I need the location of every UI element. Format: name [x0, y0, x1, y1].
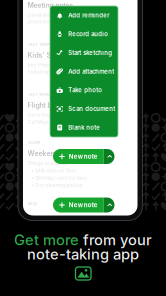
staticText: LAST WEEK [27, 42, 50, 47]
staticText: New note [69, 201, 98, 209]
staticText: from your [79, 231, 152, 249]
staticText: Blank note [68, 124, 100, 131]
staticText: Weekend list [27, 149, 70, 158]
staticText: David was going to check the [27, 12, 97, 18]
staticText: Flight bookings [27, 101, 77, 109]
staticText: Go to the airline site and [27, 112, 84, 118]
staticText: • Birthday card for Sam [31, 175, 86, 181]
button[interactable]: Add attachment [50, 62, 118, 81]
staticText: LAST MONTH [27, 92, 55, 97]
button[interactable]: Take photo [50, 81, 118, 99]
staticText: Take photo [68, 86, 102, 94]
staticText: note-taking app [27, 245, 139, 263]
staticText: Record audio [68, 30, 108, 38]
staticText: provisional quarterly budget [27, 19, 94, 25]
staticText: Meeting notes [27, 1, 73, 9]
staticText: Start sketching [68, 49, 112, 56]
staticText: Key Prep & Primary sessions [27, 62, 94, 68]
button[interactable]: Record audio [50, 25, 118, 43]
staticText: Scan document [68, 105, 115, 112]
staticText: • Milk and oat flour [31, 167, 76, 174]
button[interactable]: Add reminder [50, 6, 118, 25]
staticText: Add reminder [68, 12, 109, 19]
button[interactable]: Scan document [50, 99, 118, 118]
staticText: Kids' School [27, 51, 69, 59]
staticText: Things to pick up: [27, 160, 68, 166]
staticText: New note [69, 153, 98, 160]
staticText: 2023 [27, 201, 37, 206]
staticText: Add attachment [68, 68, 114, 75]
button[interactable]: Blank note [50, 118, 118, 137]
button[interactable]: New note [53, 197, 114, 212]
button[interactable]: Start sketching [50, 43, 118, 62]
staticText: Call Max about the transfer [27, 119, 93, 125]
staticText: Follow up about the trip fee [27, 69, 91, 75]
staticText: • Dry cleaning pickup [31, 182, 82, 188]
staticText: OLDER [27, 140, 40, 145]
staticText: Get more [14, 231, 79, 249]
button[interactable]: New note [53, 149, 114, 164]
